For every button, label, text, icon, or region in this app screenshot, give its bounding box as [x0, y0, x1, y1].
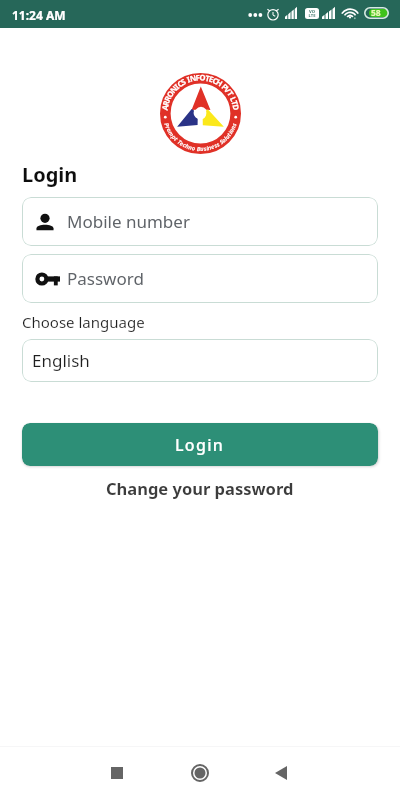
button[interactable]: English	[22, 339, 378, 382]
button[interactable]: Password	[22, 254, 378, 303]
button[interactable]: Recent apps	[93, 749, 141, 797]
button[interactable]: Home	[176, 749, 224, 797]
staticText: English	[32, 349, 90, 372]
staticText: 11:24 AM	[12, 7, 66, 23]
button[interactable]: Back	[257, 749, 305, 797]
button[interactable]: Login	[22, 423, 378, 466]
staticText: Password	[67, 267, 144, 290]
staticText: Login	[22, 161, 78, 188]
button[interactable]: Change your password	[98, 474, 302, 502]
staticText: Mobile number	[67, 210, 190, 233]
staticText: Choose language	[22, 312, 145, 332]
button[interactable]: Mobile number	[22, 197, 378, 246]
staticText: Login	[175, 434, 225, 456]
staticText: 58	[371, 7, 381, 19]
